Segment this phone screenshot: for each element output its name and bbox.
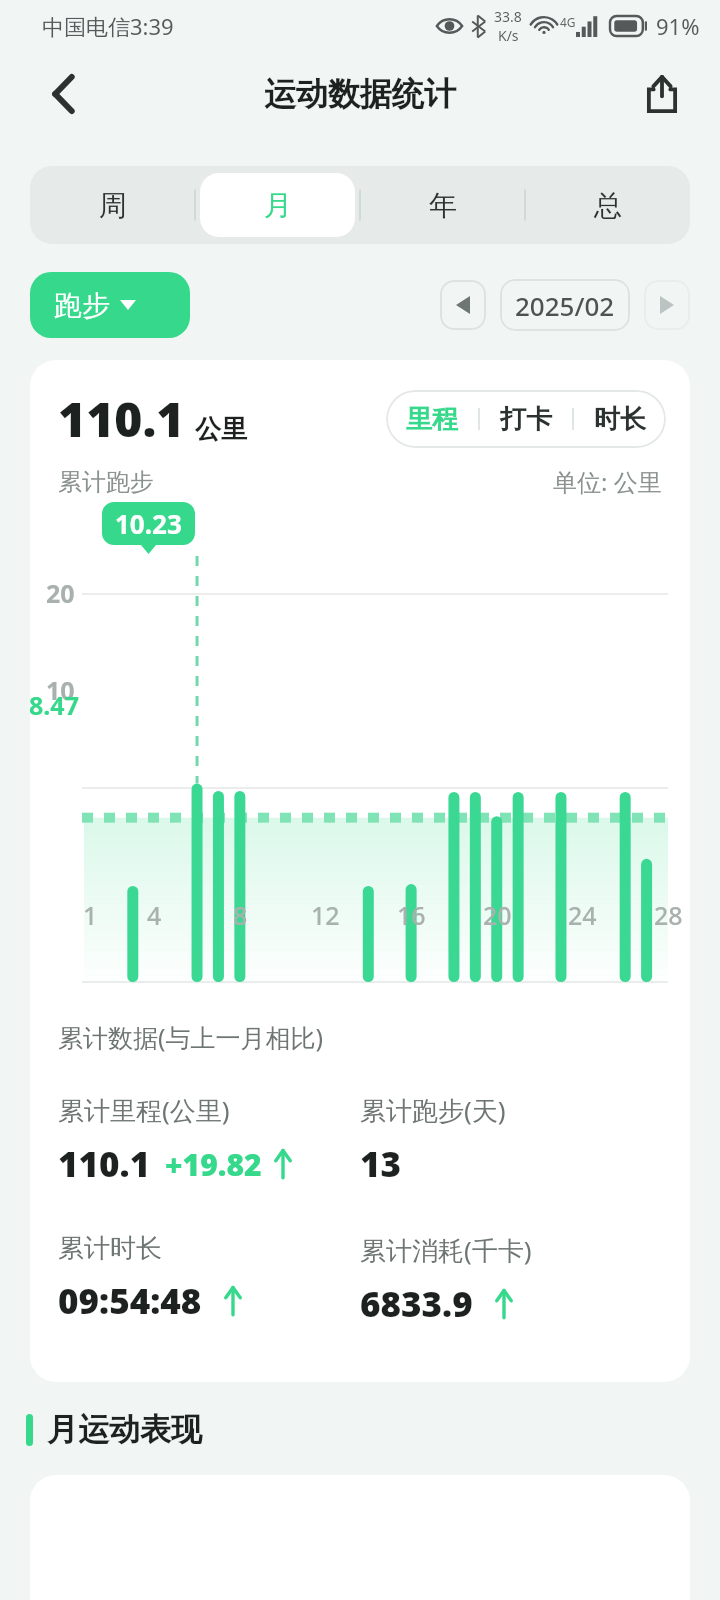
staticText: 24: [568, 898, 597, 932]
staticText: 4: [147, 898, 162, 932]
button[interactable]: Next month: [644, 280, 690, 330]
staticText: 8: [233, 898, 248, 932]
staticText: 年: [429, 188, 457, 223]
staticText: 总: [594, 188, 622, 223]
staticText: 中国电信3:39: [42, 11, 174, 41]
staticText: 110.1: [58, 386, 185, 451]
button[interactable]: 2025/02: [500, 279, 630, 331]
staticText: 月: [264, 188, 292, 223]
button[interactable]: 总: [530, 173, 685, 237]
button[interactable]: 年: [365, 173, 520, 237]
staticText: 12: [311, 898, 340, 932]
staticText: 里程: [406, 403, 458, 436]
staticText: 6833.9: [360, 1280, 473, 1328]
staticText: 2025/02: [515, 288, 615, 323]
button[interactable]: Previous month: [440, 280, 486, 330]
staticText: 1: [83, 898, 98, 932]
staticText: 累计跑步: [58, 467, 154, 497]
staticText: 累计跑步(天): [360, 1092, 506, 1128]
button[interactable]: Share: [632, 64, 692, 124]
staticText: 时长: [594, 403, 646, 436]
button[interactable]: 打卡: [480, 390, 572, 448]
staticText: K/s: [498, 26, 519, 45]
button[interactable]: 里程: [386, 390, 478, 448]
staticText: 单位: 公里: [553, 465, 662, 498]
staticText: 10: [46, 673, 75, 707]
button[interactable]: 跑步: [30, 272, 190, 338]
staticText: 跑步: [54, 288, 110, 323]
staticText: 累计数据(与上一月相比): [58, 1020, 324, 1054]
staticText: 13: [360, 1140, 402, 1188]
staticText: 20: [46, 576, 75, 610]
staticText: 10.23: [115, 506, 182, 541]
staticText: 运动数据统计: [264, 74, 456, 114]
staticText: 09:54:48: [58, 1277, 202, 1325]
staticText: 16: [397, 898, 426, 932]
staticText: 公里: [195, 413, 247, 446]
staticText: 8.47: [30, 688, 79, 722]
staticText: 110.1: [58, 1140, 151, 1188]
staticText: 累计消耗(千卡): [360, 1232, 532, 1268]
staticText: 91%: [656, 11, 700, 41]
staticText: 月运动表现: [47, 1410, 202, 1449]
staticText: 28: [654, 898, 683, 932]
button[interactable]: 时长: [574, 390, 666, 448]
staticText: +19.82: [165, 1144, 262, 1185]
button[interactable]: 月: [200, 173, 355, 237]
staticText: 周: [99, 188, 127, 223]
staticText: 累计时长: [58, 1232, 162, 1265]
button[interactable]: Back: [34, 64, 94, 124]
staticText: 33.8: [494, 7, 522, 26]
button[interactable]: 周: [35, 173, 190, 237]
staticText: 累计里程(公里): [58, 1092, 230, 1128]
staticText: 打卡: [500, 403, 552, 436]
staticText: 20: [483, 898, 512, 932]
staticText: 4G: [560, 14, 576, 30]
